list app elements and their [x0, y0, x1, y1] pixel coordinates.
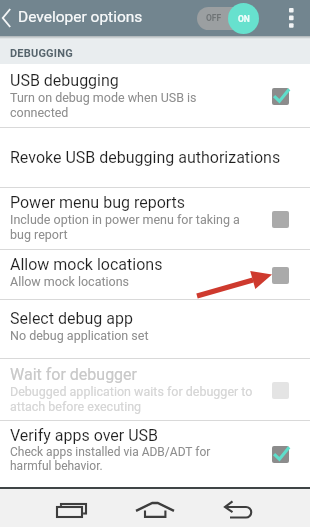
- staticText: Select debug app: [10, 309, 133, 328]
- staticText: Allow mock locations: [10, 255, 163, 274]
- staticText: Verify apps over USB: [10, 426, 159, 445]
- staticText: Allow mock locations: [10, 274, 130, 289]
- button[interactable]: OFF: [197, 2, 259, 34]
- staticText: Revoke USB debugging authorizations: [10, 148, 281, 167]
- button[interactable]: [0, 489, 104, 527]
- button[interactable]: [207, 489, 310, 527]
- staticText: No debug application set: [10, 328, 149, 343]
- button[interactable]: [104, 489, 207, 527]
- button[interactable]: Verify apps over USB: [0, 421, 310, 487]
- staticText: Power menu bug reports: [10, 193, 186, 212]
- staticText: Check apps installed via ADB/ADT for: [10, 445, 211, 459]
- staticText: Include option in power menu for taking …: [10, 212, 240, 227]
- button[interactable]: USB debugging: [0, 64, 310, 127]
- staticText: harmful behavior.: [10, 459, 103, 473]
- button[interactable]: [289, 8, 294, 28]
- staticText: Turn on debug mode when USB is: [10, 90, 197, 105]
- button[interactable]: Power menu bug reports: [0, 188, 310, 249]
- button[interactable]: Select debug app: [0, 300, 310, 358]
- staticText: connected: [10, 105, 69, 120]
- staticText: OFF: [206, 13, 222, 23]
- staticText: DEBUGGING: [10, 47, 73, 60]
- staticText: bug report: [10, 227, 68, 242]
- staticText: Wait for debugger: [10, 365, 137, 384]
- staticText: USB debugging: [10, 71, 119, 90]
- staticText: Debugged application waits for debugger …: [10, 384, 253, 399]
- staticText: attach before executing: [10, 399, 142, 414]
- button[interactable]: Wait for debugger: [0, 359, 310, 420]
- staticText: Developer options: [18, 8, 143, 26]
- button[interactable]: Allow mock locations: [0, 250, 310, 299]
- button[interactable]: Revoke USB debugging authorizations: [0, 128, 310, 187]
- staticText: ON: [238, 14, 250, 24]
